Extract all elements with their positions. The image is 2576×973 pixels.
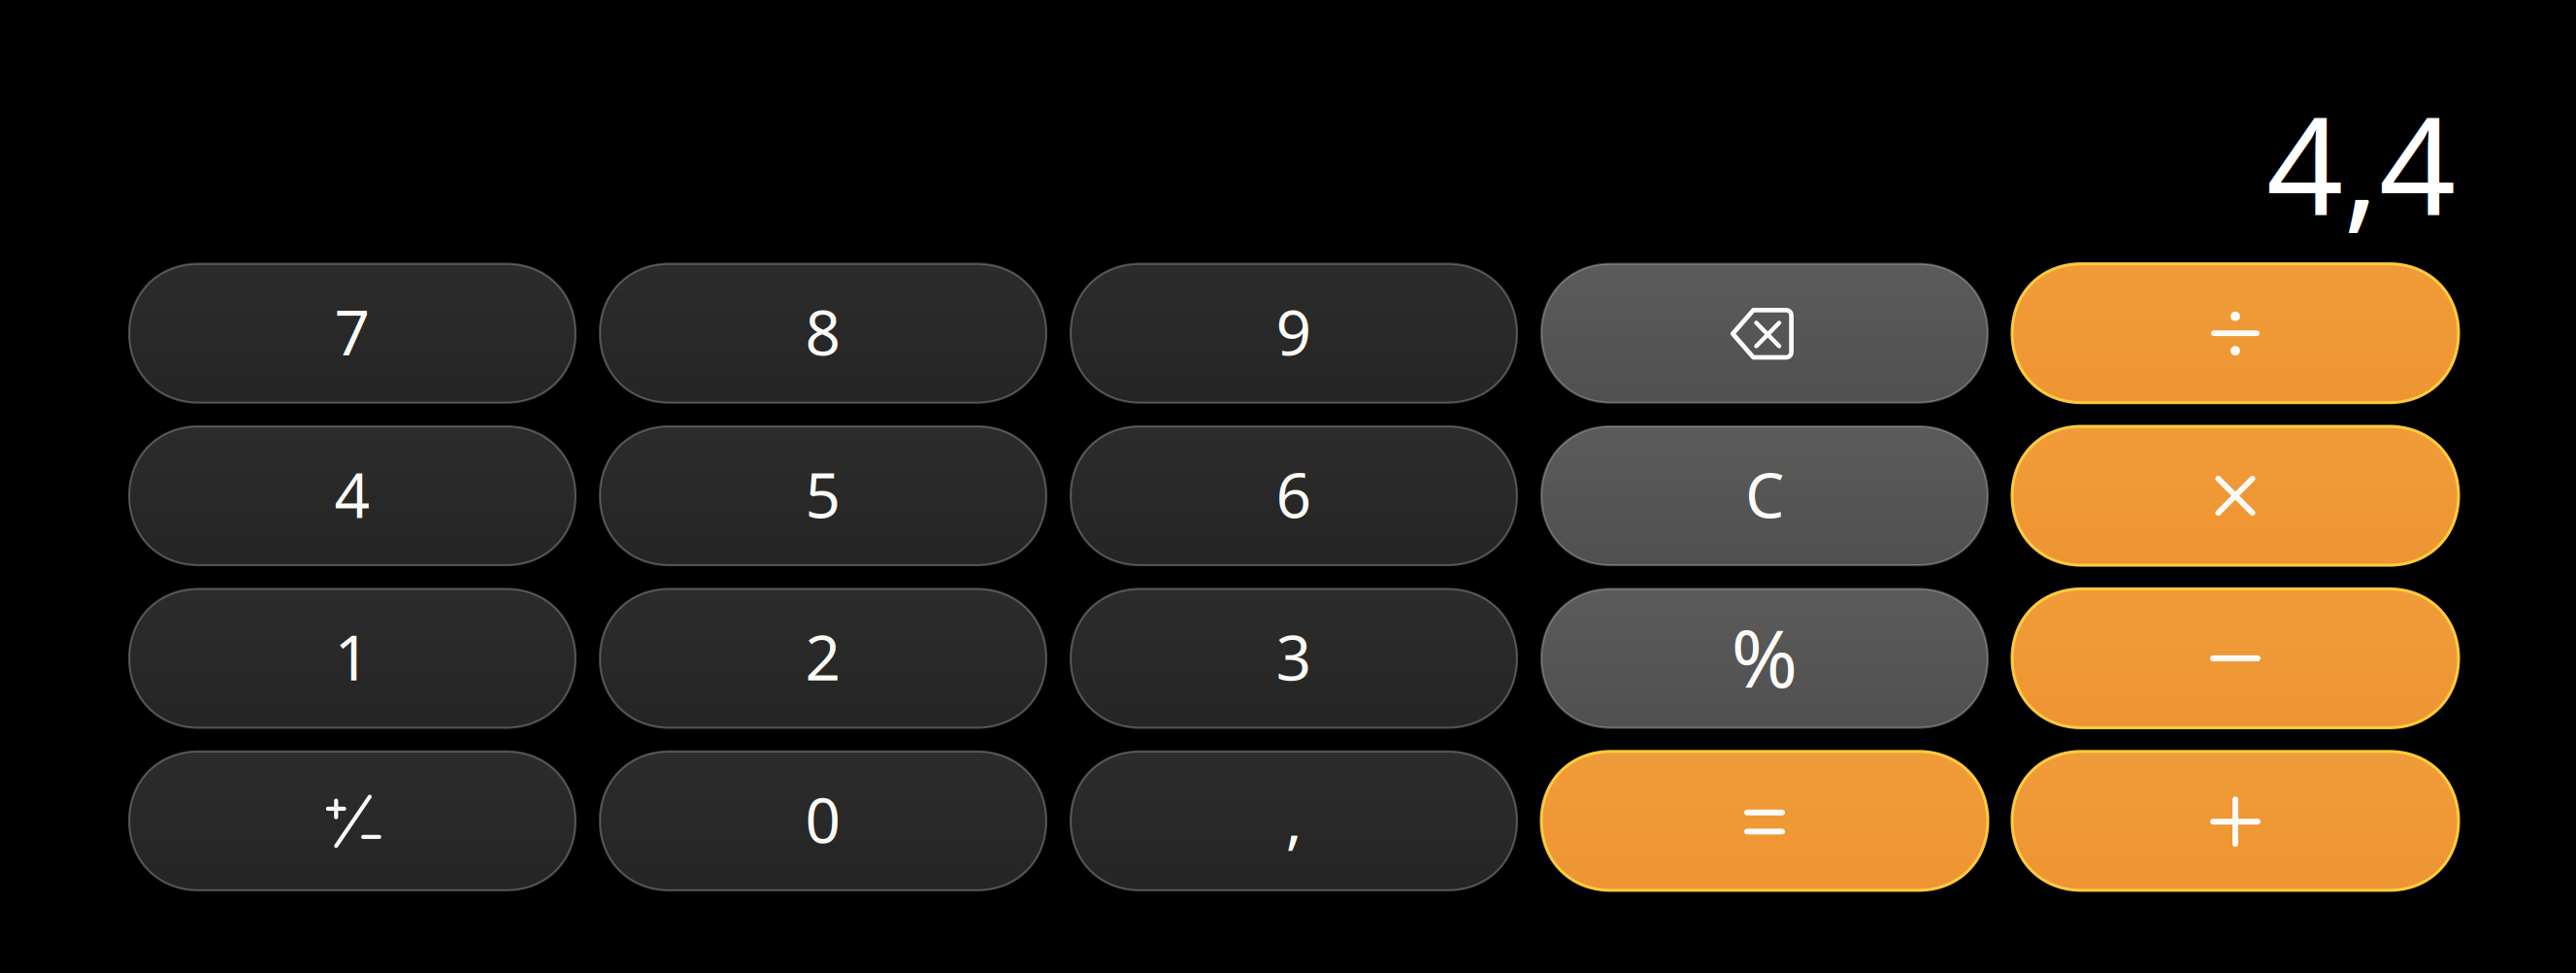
- button[interactable]: Plus minus: [129, 751, 576, 890]
- staticText: C: [1745, 453, 1784, 535]
- button[interactable]: Percent: [1541, 589, 1988, 728]
- button[interactable]: 3: [1071, 589, 1517, 728]
- button[interactable]: 6: [1071, 426, 1517, 565]
- button[interactable]: 0: [600, 751, 1046, 890]
- button[interactable]: 1: [129, 589, 576, 728]
- staticText: 6: [1276, 453, 1312, 535]
- button[interactable]: Subtract: [2012, 589, 2459, 728]
- button[interactable]: Decimal comma: [1071, 751, 1517, 890]
- staticText: 1: [334, 615, 370, 698]
- button[interactable]: Add: [2012, 751, 2459, 890]
- button[interactable]: Delete: [1541, 264, 1988, 403]
- staticText: ,: [1286, 778, 1302, 860]
- button[interactable]: Divide: [2012, 264, 2459, 403]
- staticText: 9: [1276, 290, 1312, 373]
- button[interactable]: 4: [129, 426, 576, 565]
- button[interactable]: 5: [600, 426, 1046, 565]
- staticText: %: [1731, 603, 1798, 710]
- button[interactable]: Multiply: [2012, 426, 2459, 565]
- staticText: 3: [1276, 615, 1312, 698]
- button[interactable]: Equals: [1541, 751, 1988, 890]
- staticText: 0: [805, 778, 841, 860]
- staticText: 4: [334, 453, 370, 535]
- staticText: 5: [805, 453, 841, 535]
- button[interactable]: Clear: [1541, 426, 1988, 565]
- staticText: 8: [805, 290, 841, 373]
- staticText: 7: [334, 290, 370, 373]
- button[interactable]: 8: [600, 264, 1046, 403]
- staticText: 4,4: [2266, 74, 2456, 253]
- staticText: 2: [805, 615, 841, 698]
- button[interactable]: 7: [129, 264, 576, 403]
- button[interactable]: 9: [1071, 264, 1517, 403]
- button[interactable]: 2: [600, 589, 1046, 728]
